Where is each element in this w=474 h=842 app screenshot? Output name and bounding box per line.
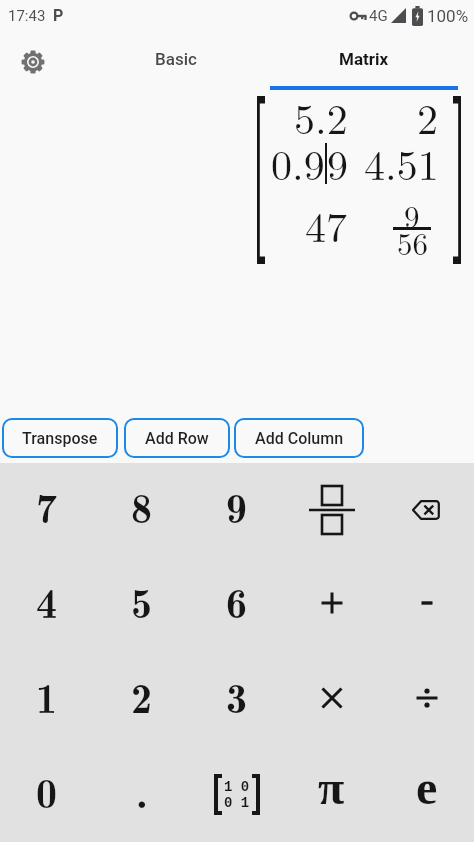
button[interactable]: 6	[189, 557, 284, 652]
button[interactable]: Transpose	[2, 418, 118, 458]
button[interactable]	[0, 36, 82, 90]
button[interactable]: .	[94, 747, 189, 842]
staticText: π	[318, 761, 345, 814]
staticText: 9	[404, 193, 420, 237]
staticText: e	[416, 761, 438, 814]
button[interactable]: 3	[189, 652, 284, 747]
staticText: .	[136, 760, 148, 820]
button[interactable]: π	[284, 747, 379, 842]
button[interactable]: 8	[94, 463, 189, 557]
button[interactable]: Basic	[82, 36, 270, 90]
staticText: 4	[36, 570, 58, 630]
staticText: 0	[36, 760, 58, 820]
staticText: 7	[36, 475, 58, 535]
button[interactable]	[284, 463, 379, 557]
staticText: 4G	[369, 7, 388, 25]
staticText: 1 0	[224, 779, 250, 795]
staticText: 47	[305, 195, 348, 255]
staticText: 9	[226, 475, 248, 535]
staticText: 0.9	[271, 133, 325, 193]
staticText: 1	[36, 665, 58, 725]
staticText: 100%	[427, 6, 469, 26]
staticText: 8	[131, 475, 153, 535]
staticText: Basic	[155, 49, 197, 69]
staticText: 2	[417, 87, 439, 147]
staticText: 4.51	[364, 133, 439, 193]
button[interactable]	[284, 557, 379, 652]
staticText: Matrix	[339, 49, 389, 69]
button[interactable]: Matrix	[270, 36, 458, 90]
staticText: 9	[327, 133, 348, 193]
button[interactable]: 0	[0, 747, 94, 842]
button[interactable]: 4	[0, 557, 94, 652]
staticText: 2	[131, 665, 153, 725]
staticText: P	[53, 6, 64, 25]
button[interactable]: 5	[94, 557, 189, 652]
staticText: Add Row	[145, 429, 209, 448]
button[interactable]: Add Column	[234, 418, 364, 458]
button[interactable]	[284, 652, 379, 747]
staticText: 17:43	[8, 7, 46, 25]
button[interactable]: e	[379, 747, 474, 842]
button[interactable]	[379, 652, 474, 747]
button[interactable]	[379, 463, 474, 557]
staticText: 0 1	[224, 795, 250, 811]
button[interactable]: 2	[94, 652, 189, 747]
staticText: 5.2	[294, 87, 348, 147]
button[interactable]: 7	[0, 463, 94, 557]
staticText: Add Column	[255, 429, 344, 448]
staticText: 56	[397, 220, 428, 264]
staticText: 6	[226, 570, 248, 630]
staticText: 5	[131, 570, 153, 630]
staticText: Transpose	[22, 429, 98, 448]
button[interactable]: 1 0	[189, 747, 284, 842]
button[interactable]: 1	[0, 652, 94, 747]
staticText: 3	[226, 665, 248, 725]
button[interactable]: 9	[189, 463, 284, 557]
button[interactable]	[379, 557, 474, 652]
button[interactable]: Add Row	[124, 418, 230, 458]
